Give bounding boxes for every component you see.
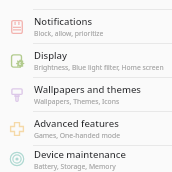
staticText: Games, One-handed mode [34, 131, 120, 140]
other: Display [9, 53, 25, 69]
staticText: Notifications [34, 15, 93, 28]
staticText: Display [34, 49, 68, 62]
button[interactable]: Notifications [0, 10, 172, 43]
staticText: Wallpapers and themes [34, 83, 141, 96]
button[interactable]: Device maintenance [0, 146, 172, 172]
staticText: Brightness, Blue light filter, Home scre… [34, 63, 164, 72]
staticText: Battery, Storage, Memory [34, 162, 116, 171]
staticText: Advanced features [34, 117, 119, 130]
button[interactable]: Advanced features [0, 112, 172, 145]
other: Notifications [9, 19, 25, 35]
other: Wallpapers and themes [9, 87, 25, 103]
button[interactable]: Display [0, 44, 172, 77]
other: Device maintenance [9, 151, 25, 167]
staticText: Block, allow, prioritize [34, 29, 104, 38]
other: Advanced features [9, 121, 25, 137]
staticText: Wallpapers, Themes, Icons [34, 97, 120, 106]
staticText: Device maintenance [34, 148, 126, 161]
button[interactable]: Wallpapers and themes [0, 78, 172, 111]
